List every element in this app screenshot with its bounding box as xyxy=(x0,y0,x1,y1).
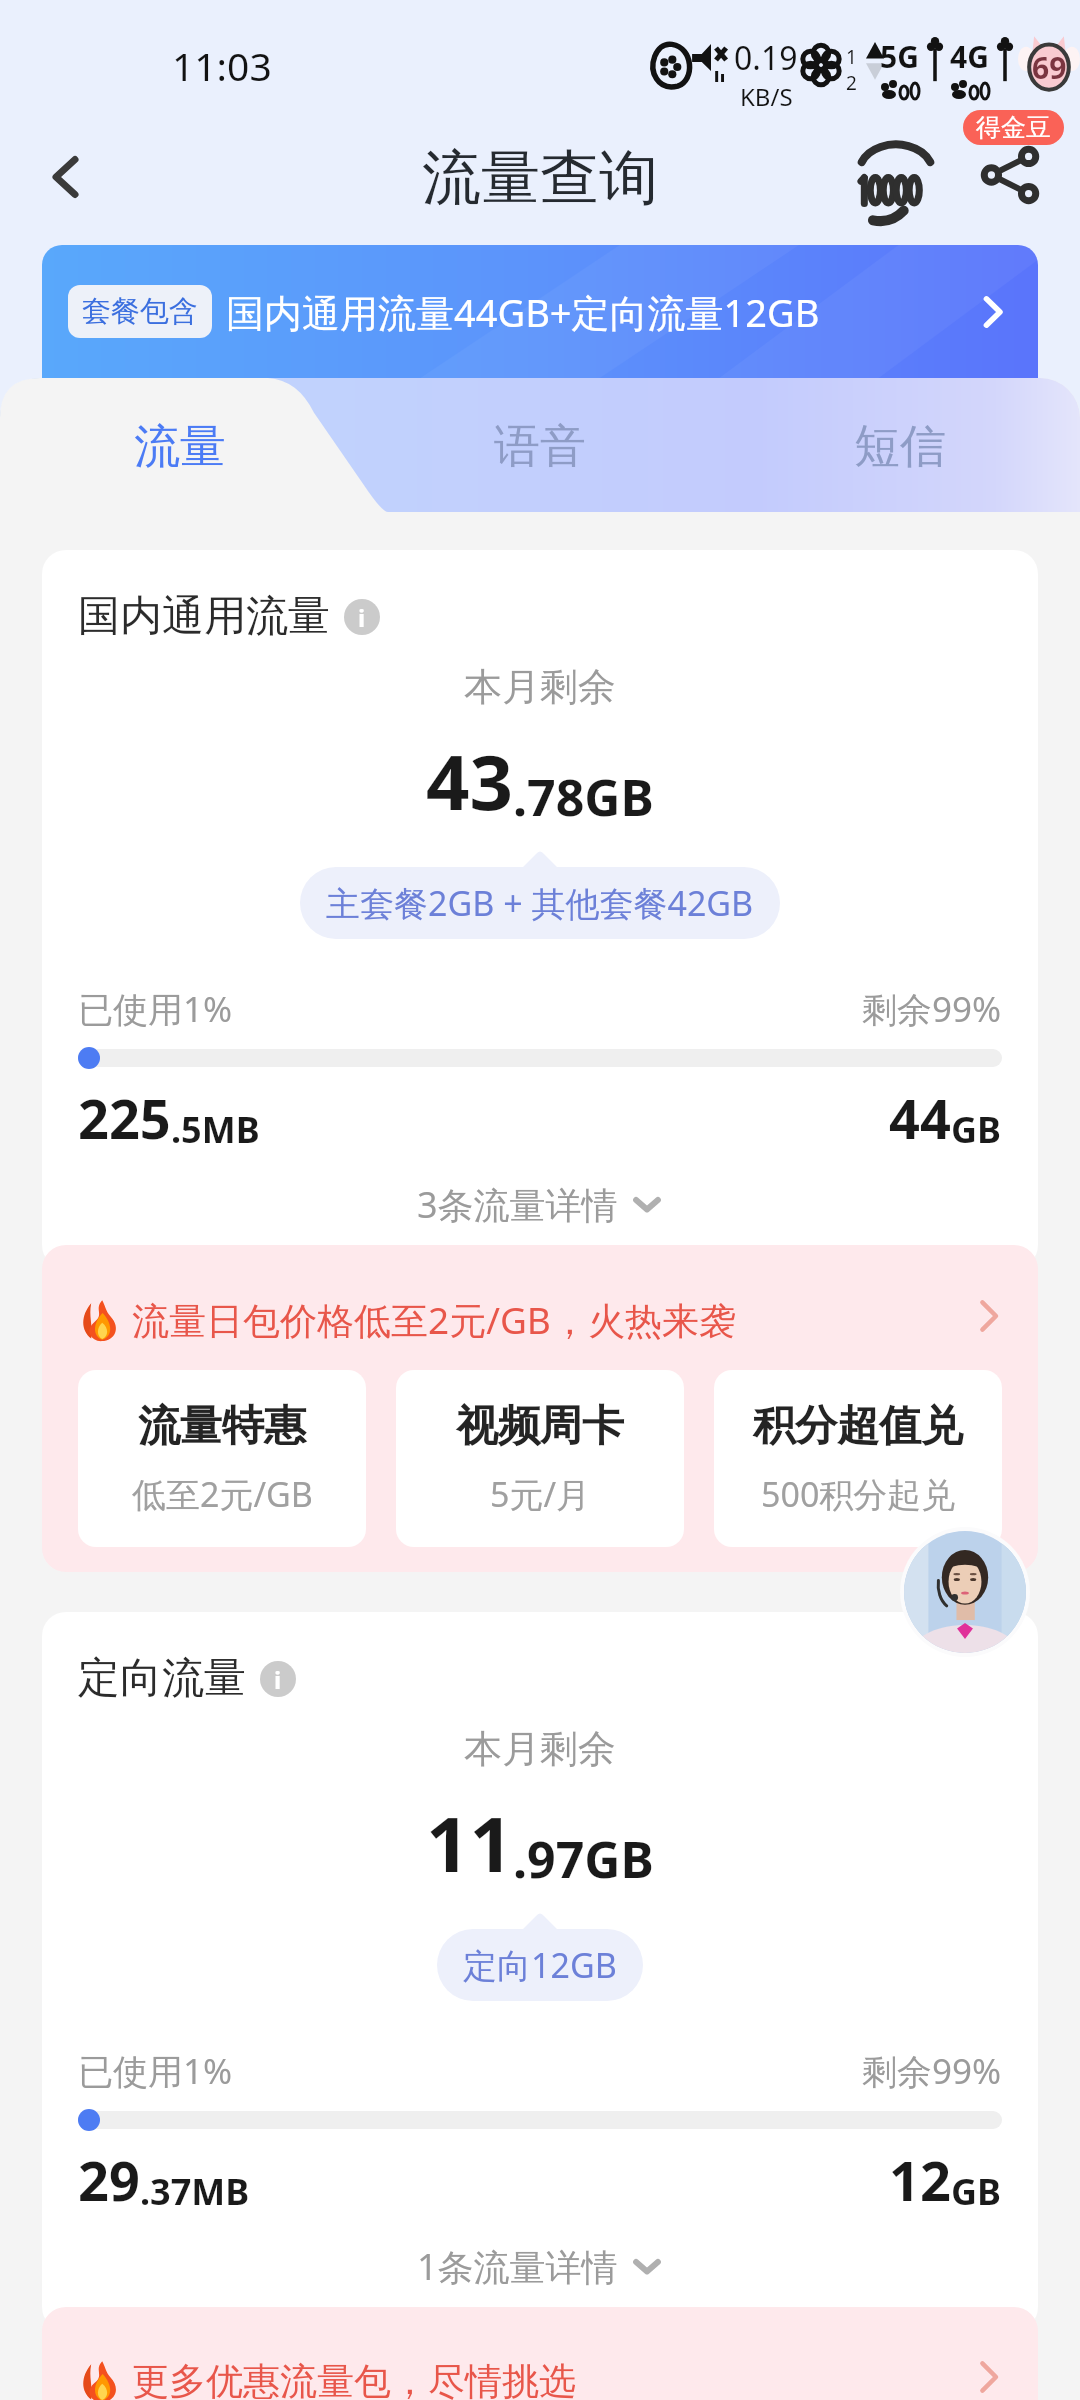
staticText: 0.19 xyxy=(734,36,798,80)
staticText: 套餐包含 xyxy=(82,293,198,330)
button[interactable]: Back xyxy=(24,135,108,219)
staticText: 已使用1% xyxy=(78,985,233,1033)
button[interactable]: 得金豆 xyxy=(963,110,1064,145)
staticText: 2 xyxy=(846,70,857,96)
button[interactable]: 积分超值兑 xyxy=(714,1370,1002,1547)
staticText: 定向12GB xyxy=(463,1942,617,1988)
staticText: 4G xyxy=(950,36,989,77)
staticText: 43 xyxy=(426,729,513,833)
staticText: i xyxy=(274,1663,282,1696)
staticText: 积分超值兑 xyxy=(753,1400,963,1453)
staticText: 5G xyxy=(880,36,919,77)
button[interactable]: 流量 xyxy=(0,378,360,512)
staticText: 流量特惠 xyxy=(138,1400,306,1453)
staticText: 1 xyxy=(846,44,857,70)
staticText: 69 xyxy=(1032,47,1067,88)
staticText: .78GB xyxy=(513,763,654,831)
button[interactable]: 视频周卡 xyxy=(396,1370,684,1547)
button[interactable]: 3条流量详情 xyxy=(78,1173,1002,1235)
staticText: KB/S xyxy=(740,80,793,113)
button[interactable]: 更多优惠流量包，尽情挑选 xyxy=(42,2331,1038,2400)
staticText: 短信 xyxy=(854,418,946,476)
staticText: .37MB xyxy=(140,2167,250,2216)
staticText: 12 xyxy=(889,2143,951,2217)
staticText: 225 xyxy=(78,1081,171,1155)
staticText: GB xyxy=(951,2167,1002,2216)
staticText: 11 xyxy=(426,1791,513,1895)
button[interactable]: Online customer service xyxy=(900,1527,1030,1657)
staticText: 更多优惠流量包，尽情挑选 xyxy=(132,2358,576,2400)
staticText: 本月剩余 xyxy=(78,1725,1002,1773)
staticText: 国内通用流量 xyxy=(78,590,330,643)
staticText: 44 xyxy=(889,1081,951,1155)
staticText: 语音 xyxy=(494,418,586,476)
staticText: 5元/月 xyxy=(490,1471,591,1517)
staticText: 剩余99% xyxy=(862,985,1002,1033)
staticText: 1条流量详情 xyxy=(417,2242,618,2291)
button[interactable]: 套餐包含 xyxy=(42,245,1038,378)
button[interactable]: 流量日包价格低至2元/GB，火热来袭 xyxy=(42,1269,1038,1370)
staticText: .5MB xyxy=(171,1105,260,1154)
button[interactable]: 1条流量详情 xyxy=(78,2235,1002,2297)
button[interactable]: Share xyxy=(962,127,1058,223)
staticText: 本月剩余 xyxy=(78,663,1002,711)
staticText: 流量查询 xyxy=(422,141,658,215)
staticText: 流量日包价格低至2元/GB，火热来袭 xyxy=(132,1294,736,1345)
button[interactable]: 流量特惠 xyxy=(78,1370,366,1547)
staticText: 3条流量详情 xyxy=(417,1180,618,1229)
staticText: 国内通用流量44GB+定向流量12GB xyxy=(226,286,820,338)
staticText: 主套餐2GB + 其他套餐42GB xyxy=(326,880,754,926)
button[interactable]: Customer service xyxy=(846,129,946,229)
staticText: 已使用1% xyxy=(78,2047,233,2095)
staticText: 11:03 xyxy=(172,39,272,92)
staticText: 剩余99% xyxy=(862,2047,1002,2095)
button[interactable]: 语音 xyxy=(360,378,720,512)
staticText: .97GB xyxy=(513,1825,654,1893)
button[interactable]: 短信 xyxy=(720,378,1080,512)
staticText: 得金豆 xyxy=(976,112,1051,143)
staticText: 流量 xyxy=(134,418,226,476)
staticText: 定向流量 xyxy=(78,1652,246,1705)
staticText: 500积分起兑 xyxy=(761,1471,956,1517)
staticText: 29 xyxy=(78,2143,140,2217)
staticText: GB xyxy=(951,1105,1002,1154)
staticText: 视频周卡 xyxy=(456,1400,624,1453)
staticText: i xyxy=(358,601,366,634)
staticText: 低至2元/GB xyxy=(132,1471,313,1517)
